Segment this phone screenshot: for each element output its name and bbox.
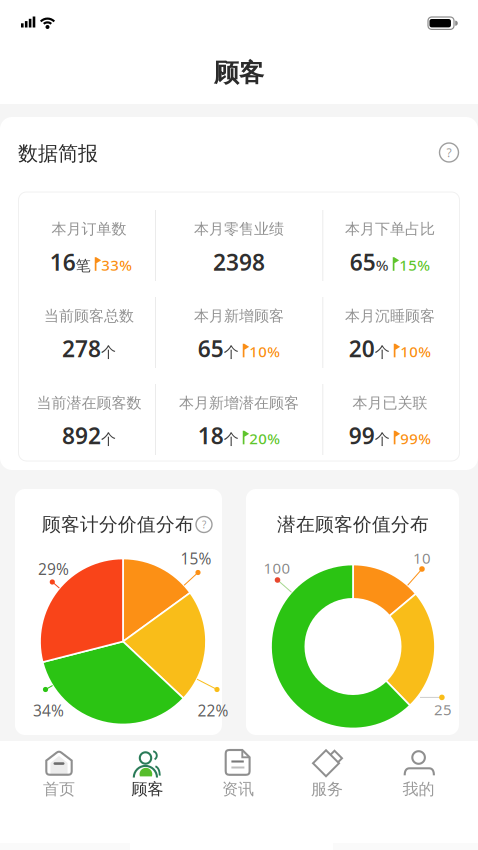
- staticText: 资讯: [222, 779, 254, 799]
- staticText: 892: [62, 420, 101, 451]
- staticText: 99: [349, 420, 375, 451]
- button[interactable]: 顾客计分价值分布帮助: [196, 516, 212, 532]
- staticText: 顾客: [214, 57, 264, 89]
- staticText: 本月新增潜在顾客: [179, 394, 299, 412]
- staticText: 22%: [197, 700, 228, 721]
- staticText: 我的: [402, 779, 434, 799]
- staticText: 15%: [399, 255, 430, 275]
- staticText: 2398: [213, 246, 265, 277]
- staticText: 潜在顾客价值分布: [277, 513, 429, 536]
- staticText: ?: [202, 518, 206, 531]
- staticText: 29%: [38, 558, 69, 579]
- staticText: 99%: [400, 428, 431, 449]
- staticText: 个: [375, 430, 390, 449]
- button[interactable]: 顾客: [105, 746, 189, 806]
- button[interactable]: 服务: [285, 746, 369, 806]
- staticText: 本月沉睡顾客: [345, 307, 435, 325]
- staticText: 本月零售业绩: [194, 220, 284, 238]
- button[interactable]: 资讯: [196, 746, 280, 806]
- button[interactable]: 我的: [376, 746, 460, 806]
- staticText: ?: [446, 144, 451, 161]
- staticText: 16: [50, 246, 76, 277]
- staticText: 34%: [33, 700, 64, 721]
- staticText: 个: [375, 343, 390, 362]
- staticText: 数据简报: [18, 141, 98, 166]
- staticText: 20%: [249, 428, 280, 449]
- staticText: 个: [224, 430, 239, 449]
- staticText: %: [376, 255, 389, 275]
- staticText: 顾客计分价值分布: [42, 513, 194, 536]
- staticText: 18: [198, 420, 224, 451]
- staticText: 278: [62, 333, 101, 364]
- staticText: 65: [350, 246, 376, 277]
- staticText: 10%: [400, 341, 431, 362]
- button[interactable]: 首页: [17, 746, 101, 806]
- staticText: 10: [413, 548, 431, 568]
- staticText: 个: [224, 343, 239, 362]
- button[interactable]: 数据简报帮助: [439, 143, 458, 162]
- staticText: 25: [434, 699, 452, 720]
- staticText: 顾客: [131, 779, 163, 799]
- staticText: 33%: [101, 255, 132, 275]
- staticText: 服务: [311, 779, 343, 799]
- staticText: 个: [101, 430, 116, 449]
- staticText: 65: [198, 333, 224, 364]
- staticText: 笔: [76, 256, 91, 275]
- staticText: 10%: [249, 341, 280, 362]
- staticText: 首页: [43, 779, 75, 799]
- staticText: 个: [101, 343, 116, 362]
- staticText: 当前潜在顾客数: [36, 394, 141, 412]
- staticText: 本月订单数: [51, 220, 126, 238]
- staticText: 本月下单占比: [345, 220, 435, 238]
- staticText: 本月新增顾客: [194, 307, 284, 325]
- staticText: 当前顾客总数: [44, 307, 134, 325]
- staticText: 15%: [180, 548, 211, 569]
- staticText: 20: [349, 333, 375, 364]
- staticText: 本月已关联: [352, 394, 427, 412]
- staticText: 100: [263, 558, 290, 578]
